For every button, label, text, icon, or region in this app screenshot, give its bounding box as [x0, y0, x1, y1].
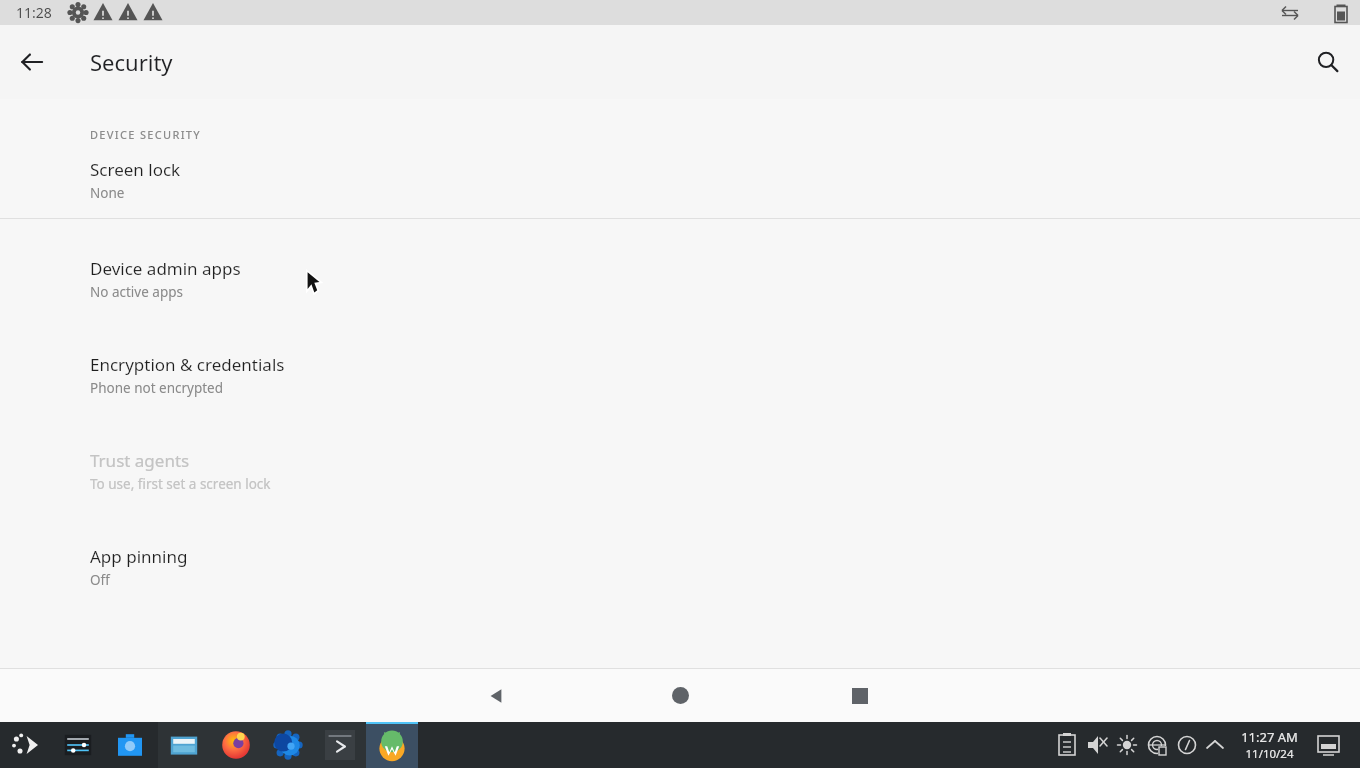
button[interactable]: Emulator	[262, 722, 314, 768]
button[interactable]: Encryption & credentials	[0, 317, 1360, 413]
button[interactable]: Search	[1304, 38, 1352, 86]
button[interactable]: Recent apps	[824, 669, 896, 722]
button[interactable]: Work apps	[104, 722, 156, 768]
staticText: Phone not encrypted	[90, 379, 224, 397]
button[interactable]: Android Studio	[366, 722, 418, 768]
button[interactable]: Activities	[0, 722, 52, 768]
button[interactable]: Terminal	[314, 722, 366, 768]
staticText: Encryption & credentials	[90, 353, 285, 376]
button[interactable]: Files	[158, 722, 210, 768]
staticText: Trust agents	[90, 449, 190, 472]
staticText: No active apps	[90, 283, 183, 301]
button[interactable]: Settings	[52, 722, 104, 768]
button[interactable]: App pinning	[0, 509, 1360, 605]
staticText: Screen lock	[90, 158, 181, 181]
staticText: App pinning	[90, 545, 188, 568]
button[interactable]: Trust agents	[0, 413, 1360, 509]
button[interactable]: Back	[8, 38, 56, 86]
staticText: Device admin apps	[90, 257, 241, 280]
staticText: To use, first set a screen lock	[90, 475, 271, 493]
button[interactable]: Screen lock	[0, 142, 1360, 218]
staticText: Off	[90, 571, 110, 589]
staticText: 11:28	[16, 3, 52, 22]
staticText: None	[90, 184, 125, 202]
button[interactable]: Firefox	[210, 722, 262, 768]
staticText: Security	[90, 47, 173, 77]
staticText: 11/10/24	[1245, 746, 1294, 762]
staticText: 11:27 AM	[1241, 728, 1298, 746]
button[interactable]: Back	[461, 669, 533, 722]
button[interactable]: Device admin apps	[0, 219, 1360, 317]
button[interactable]: Home	[644, 669, 716, 722]
staticText: DEVICE SECURITY	[90, 127, 202, 142]
